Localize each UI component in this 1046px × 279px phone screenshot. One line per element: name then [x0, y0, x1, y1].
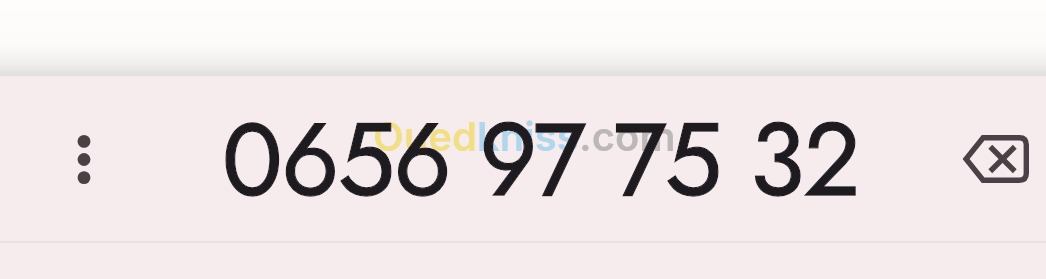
staticText: .com — [579, 112, 676, 160]
staticText: Oued — [373, 112, 477, 160]
button[interactable]: More options — [24, 98, 144, 220]
button[interactable]: Backspace — [935, 98, 1046, 220]
staticText: kniss — [477, 112, 579, 160]
staticText: 0656 97 75 32 — [222, 87, 860, 209]
staticText: 0656 97 75 32 — [222, 87, 860, 209]
